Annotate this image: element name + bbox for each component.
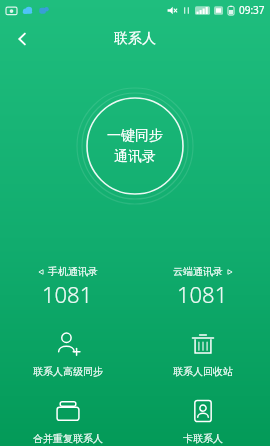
button[interactable]: 联系人高级同步: [0, 325, 135, 383]
staticText: 合并重复联系人: [33, 432, 103, 445]
button[interactable]: 卡联系人: [135, 392, 270, 446]
staticText: 手机通讯录: [48, 265, 98, 278]
button[interactable]: 云端通讯录: [135, 263, 270, 311]
other: 合并重复联系人: [55, 398, 81, 424]
staticText: 1081: [177, 279, 228, 309]
button[interactable]: Back: [4, 21, 40, 57]
other: 卡联系人: [191, 399, 215, 423]
staticText: 联系人: [114, 30, 156, 48]
staticText: 一键同步: [107, 127, 163, 145]
staticText: 联系人高级同步: [33, 365, 103, 378]
button[interactable]: 手机通讯录: [0, 263, 135, 311]
staticText: 1081: [42, 279, 93, 309]
button[interactable]: 合并重复联系人: [0, 392, 135, 446]
staticText: 09:37: [239, 3, 265, 17]
staticText: 云端通讯录: [173, 265, 223, 278]
button[interactable]: 联系人回收站: [135, 325, 270, 383]
staticText: 联系人回收站: [173, 365, 233, 378]
other: 联系人高级同步: [55, 331, 81, 357]
staticText: 卡联系人: [183, 432, 223, 445]
staticText: 通讯录: [114, 148, 156, 166]
other: 联系人回收站: [191, 332, 215, 356]
button[interactable]: 一键同步: [76, 87, 194, 205]
